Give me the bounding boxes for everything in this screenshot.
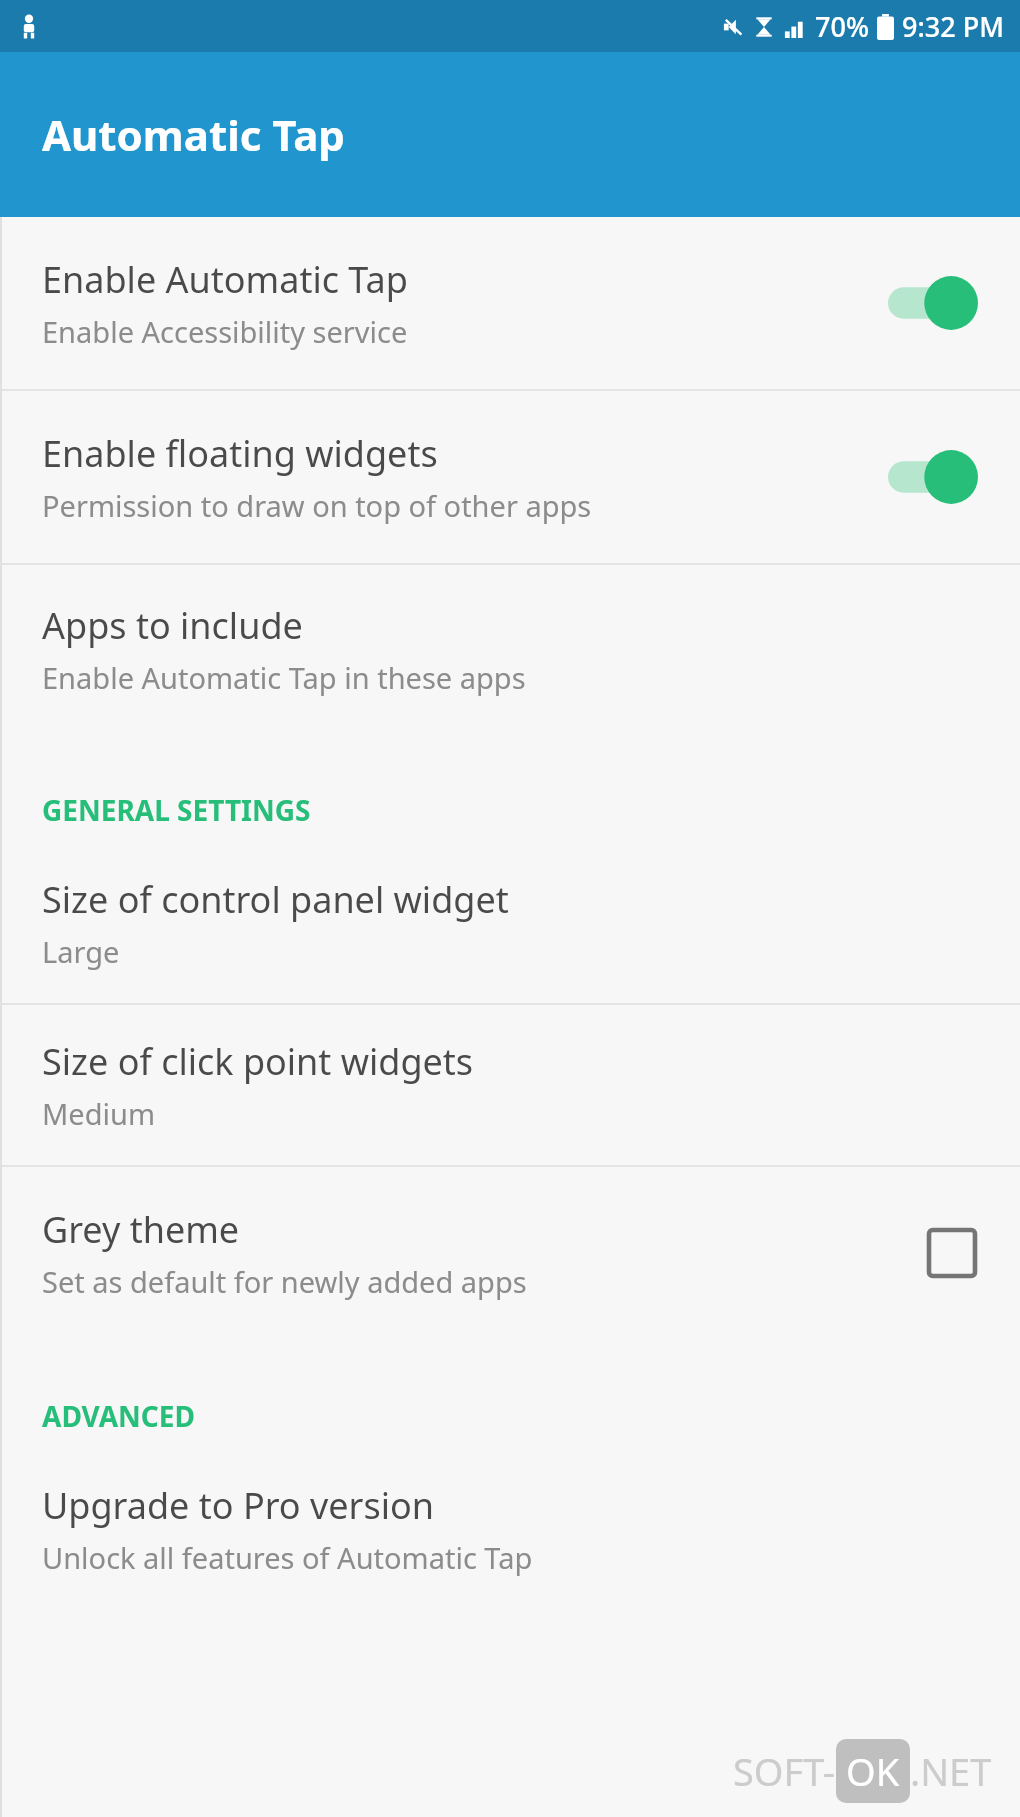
- staticText: Large: [42, 932, 120, 971]
- staticText: Size of control panel widget: [42, 875, 509, 924]
- staticText: Grey theme: [42, 1205, 240, 1254]
- button[interactable]: Toggle Enable Automatic Tap: [888, 275, 978, 331]
- staticText: Enable Automatic Tap in these apps: [42, 658, 526, 697]
- staticText: Permission to draw on top of other apps: [42, 486, 592, 525]
- staticText: Automatic Tap: [42, 106, 345, 163]
- button[interactable]: Toggle Enable floating widgets: [888, 449, 978, 505]
- staticText: Upgrade to Pro version: [42, 1481, 434, 1530]
- staticText: Enable Automatic Tap: [42, 255, 408, 304]
- staticText: ADVANCED: [42, 1397, 195, 1435]
- staticText: Unlock all features of Automatic Tap: [42, 1538, 533, 1577]
- staticText: SOFT-: [733, 1745, 836, 1797]
- button[interactable]: Grey theme: [0, 1167, 1020, 1339]
- button[interactable]: Size of click point widgets: [0, 1005, 1020, 1165]
- button[interactable]: Enable floating widgets: [0, 391, 1020, 563]
- button[interactable]: Size of control panel widget: [0, 843, 1020, 1003]
- staticText: GENERAL SETTINGS: [42, 791, 311, 829]
- staticText: OK: [846, 1745, 900, 1797]
- staticText: 9:32 PM: [902, 8, 1004, 45]
- staticText: Size of click point widgets: [42, 1037, 474, 1086]
- button[interactable]: Apps to include: [0, 565, 1020, 733]
- button[interactable]: Enable Automatic Tap: [0, 217, 1020, 389]
- button[interactable]: Upgrade to Pro version: [0, 1449, 1020, 1609]
- staticText: Enable Accessibility service: [42, 312, 408, 351]
- staticText: .NET: [910, 1745, 992, 1797]
- staticText: Set as default for newly added apps: [42, 1262, 527, 1301]
- button[interactable]: Grey theme checkbox: [926, 1227, 978, 1279]
- staticText: Medium: [42, 1094, 156, 1133]
- staticText: Apps to include: [42, 601, 303, 650]
- staticText: 70%: [815, 8, 869, 45]
- staticText: Enable floating widgets: [42, 429, 438, 478]
